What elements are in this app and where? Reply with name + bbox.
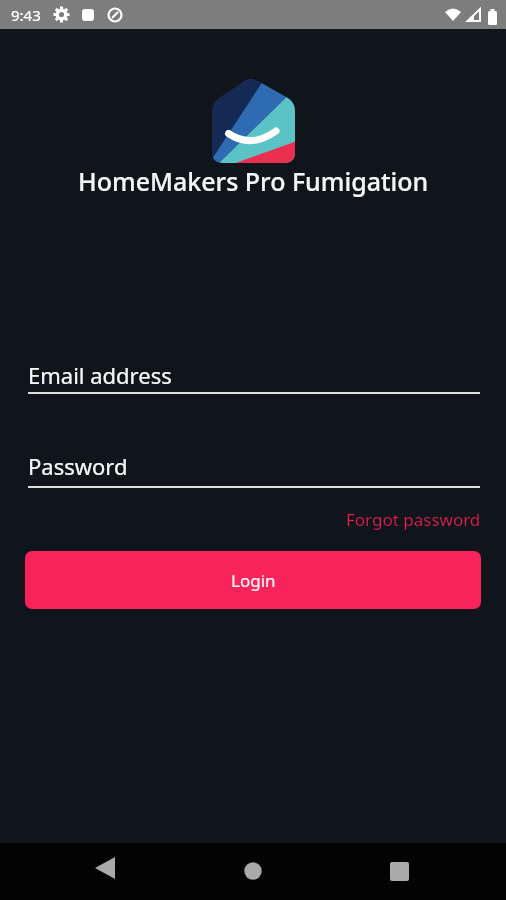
staticText: HomeMakers Pro Fumigation [78, 164, 429, 198]
button[interactable]: Password [25, 451, 481, 488]
button[interactable] [94, 857, 116, 879]
button[interactable]: Forgot password [346, 508, 481, 531]
button[interactable]: Login [25, 551, 481, 609]
staticText: Login [231, 569, 276, 592]
button[interactable] [390, 862, 409, 881]
staticText: Password [28, 451, 128, 481]
staticText: Email address [28, 360, 172, 390]
staticText: 9:43 [11, 5, 41, 25]
button[interactable] [244, 862, 262, 880]
button[interactable]: Email address [25, 360, 481, 394]
